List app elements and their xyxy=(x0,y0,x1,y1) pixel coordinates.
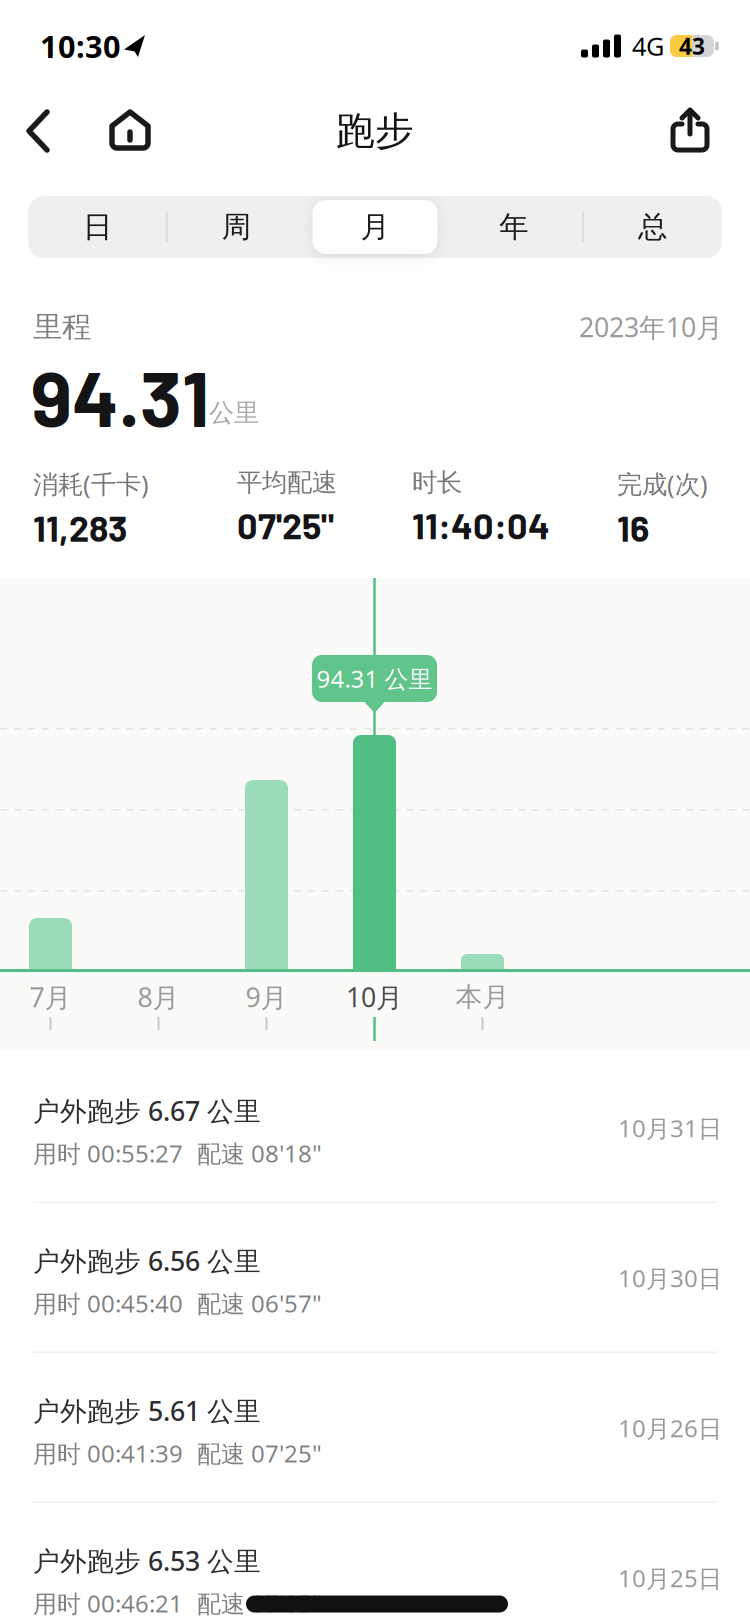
staticText: 11,283 xyxy=(33,506,127,549)
staticText: 16 xyxy=(617,506,649,549)
staticText: 10月30日 xyxy=(618,1262,722,1294)
staticText: 月 xyxy=(360,209,389,245)
button[interactable] xyxy=(18,107,66,155)
staticText: 11:40:04 xyxy=(412,503,550,546)
staticText: 里程 xyxy=(33,309,91,345)
button[interactable]: 日 xyxy=(35,200,160,254)
button[interactable]: 户外跑步 6.56 公里 xyxy=(0,1203,750,1353)
staticText: 9月 xyxy=(245,979,287,1015)
staticText: 户外跑步 6.56 公里 xyxy=(33,1243,261,1278)
staticText: 平均配速 xyxy=(237,467,337,498)
staticText: 用时 00:41:39 xyxy=(33,1437,183,1469)
button[interactable]: 周 xyxy=(174,200,299,254)
button[interactable]: 户外跑步 5.61 公里 xyxy=(0,1353,750,1503)
staticText: 用时 00:46:21 xyxy=(33,1587,183,1619)
staticText: 10:30 xyxy=(40,26,121,66)
staticText: 消耗(千卡) xyxy=(33,467,149,501)
button[interactable] xyxy=(106,107,154,155)
staticText: 总 xyxy=(638,209,667,245)
staticText: 4G xyxy=(632,29,664,63)
staticText: 94.31 xyxy=(31,350,209,442)
staticText: 8月 xyxy=(137,979,179,1015)
button[interactable]: 年 xyxy=(451,200,576,254)
staticText: 公里 xyxy=(209,397,259,428)
staticText: 用时 00:55:27 xyxy=(33,1137,183,1169)
staticText: 10月 xyxy=(346,979,403,1015)
staticText: 年 xyxy=(499,209,528,245)
staticText: 日 xyxy=(83,209,112,245)
staticText: 户外跑步 6.53 公里 xyxy=(33,1543,261,1578)
staticText: 户外跑步 6.67 公里 xyxy=(33,1093,261,1128)
staticText: 94.31 公里 xyxy=(316,663,432,694)
button[interactable]: 总 xyxy=(590,200,715,254)
staticText: 配速 08'18" xyxy=(197,1137,322,1169)
staticText: 完成(次) xyxy=(617,467,708,501)
staticText: 用时 00:45:40 xyxy=(33,1287,183,1319)
staticText: 7月 xyxy=(29,979,71,1015)
staticText: 跑步 xyxy=(336,107,414,155)
staticText: 配速 06'57" xyxy=(197,1287,322,1319)
staticText: 户外跑步 5.61 公里 xyxy=(33,1393,261,1428)
staticText: 10月25日 xyxy=(618,1562,722,1594)
staticText: 10月31日 xyxy=(618,1112,722,1144)
staticText: 配速 07'25" xyxy=(197,1437,322,1469)
button[interactable]: 月 xyxy=(312,200,437,254)
button[interactable]: 户外跑步 6.53 公里 xyxy=(0,1503,750,1624)
staticText: 本月 xyxy=(455,981,509,1013)
staticText: 07'25" xyxy=(237,503,334,546)
staticText: 时长 xyxy=(412,467,462,498)
button[interactable]: 户外跑步 6.67 公里 xyxy=(0,1053,750,1203)
staticText: 配速 07'05" xyxy=(197,1587,322,1619)
staticText: 2023年10月 xyxy=(579,309,723,345)
staticText: 周 xyxy=(222,209,251,245)
button[interactable] xyxy=(666,107,714,155)
staticText: 43 xyxy=(679,31,705,61)
staticText: 10月26日 xyxy=(618,1412,722,1444)
